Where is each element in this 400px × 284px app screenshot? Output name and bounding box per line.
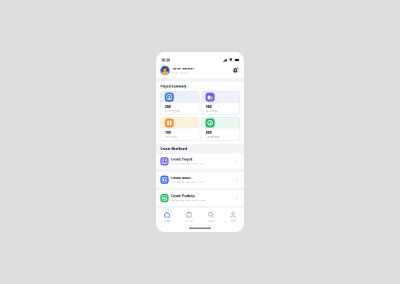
staticText: Home: [164, 219, 170, 222]
button[interactable]: Notifications: [232, 66, 240, 75]
staticText: Completed: [206, 135, 220, 139]
staticText: 300: [206, 105, 212, 109]
staticText: Profile: [230, 219, 236, 222]
button[interactable]: 100: [160, 117, 199, 140]
button[interactable]: 400: [201, 117, 240, 140]
button[interactable]: Home: [156, 211, 178, 223]
staticText: Create Portfolio: [171, 195, 195, 198]
staticText: My Task: [185, 219, 193, 222]
staticText: Create Project: [171, 158, 192, 161]
button[interactable]: Create Goals: [156, 172, 244, 187]
staticText: Project Summary: [160, 85, 186, 88]
button[interactable]: Create Portfolio: [156, 190, 244, 206]
staticText: Create New Board: [160, 147, 187, 151]
staticText: Good, morning: [173, 71, 188, 74]
staticText: Create Goals: [171, 176, 190, 180]
staticText: You can create new goals / task: [171, 180, 203, 183]
staticText: 10:30: [161, 58, 170, 62]
staticText: You can create new project task: [171, 162, 203, 165]
staticText: In Progress: [165, 110, 180, 113]
button[interactable]: Profile: [222, 211, 244, 223]
button[interactable]: Search: [200, 211, 222, 223]
button[interactable]: 300: [201, 91, 240, 115]
staticText: Hello, Ammar: [173, 67, 194, 70]
staticText: 100: [165, 130, 171, 135]
staticText: Search: [208, 219, 214, 222]
staticText: 200: [165, 105, 171, 109]
staticText: 400: [206, 130, 212, 135]
button[interactable]: 200: [160, 91, 199, 115]
staticText: On Hold: [165, 135, 177, 139]
button[interactable]: My Task: [178, 211, 200, 223]
button[interactable]: Create Project: [156, 154, 244, 169]
staticText: In Review: [206, 110, 218, 113]
staticText: You can create new portfolio task: [171, 199, 205, 202]
